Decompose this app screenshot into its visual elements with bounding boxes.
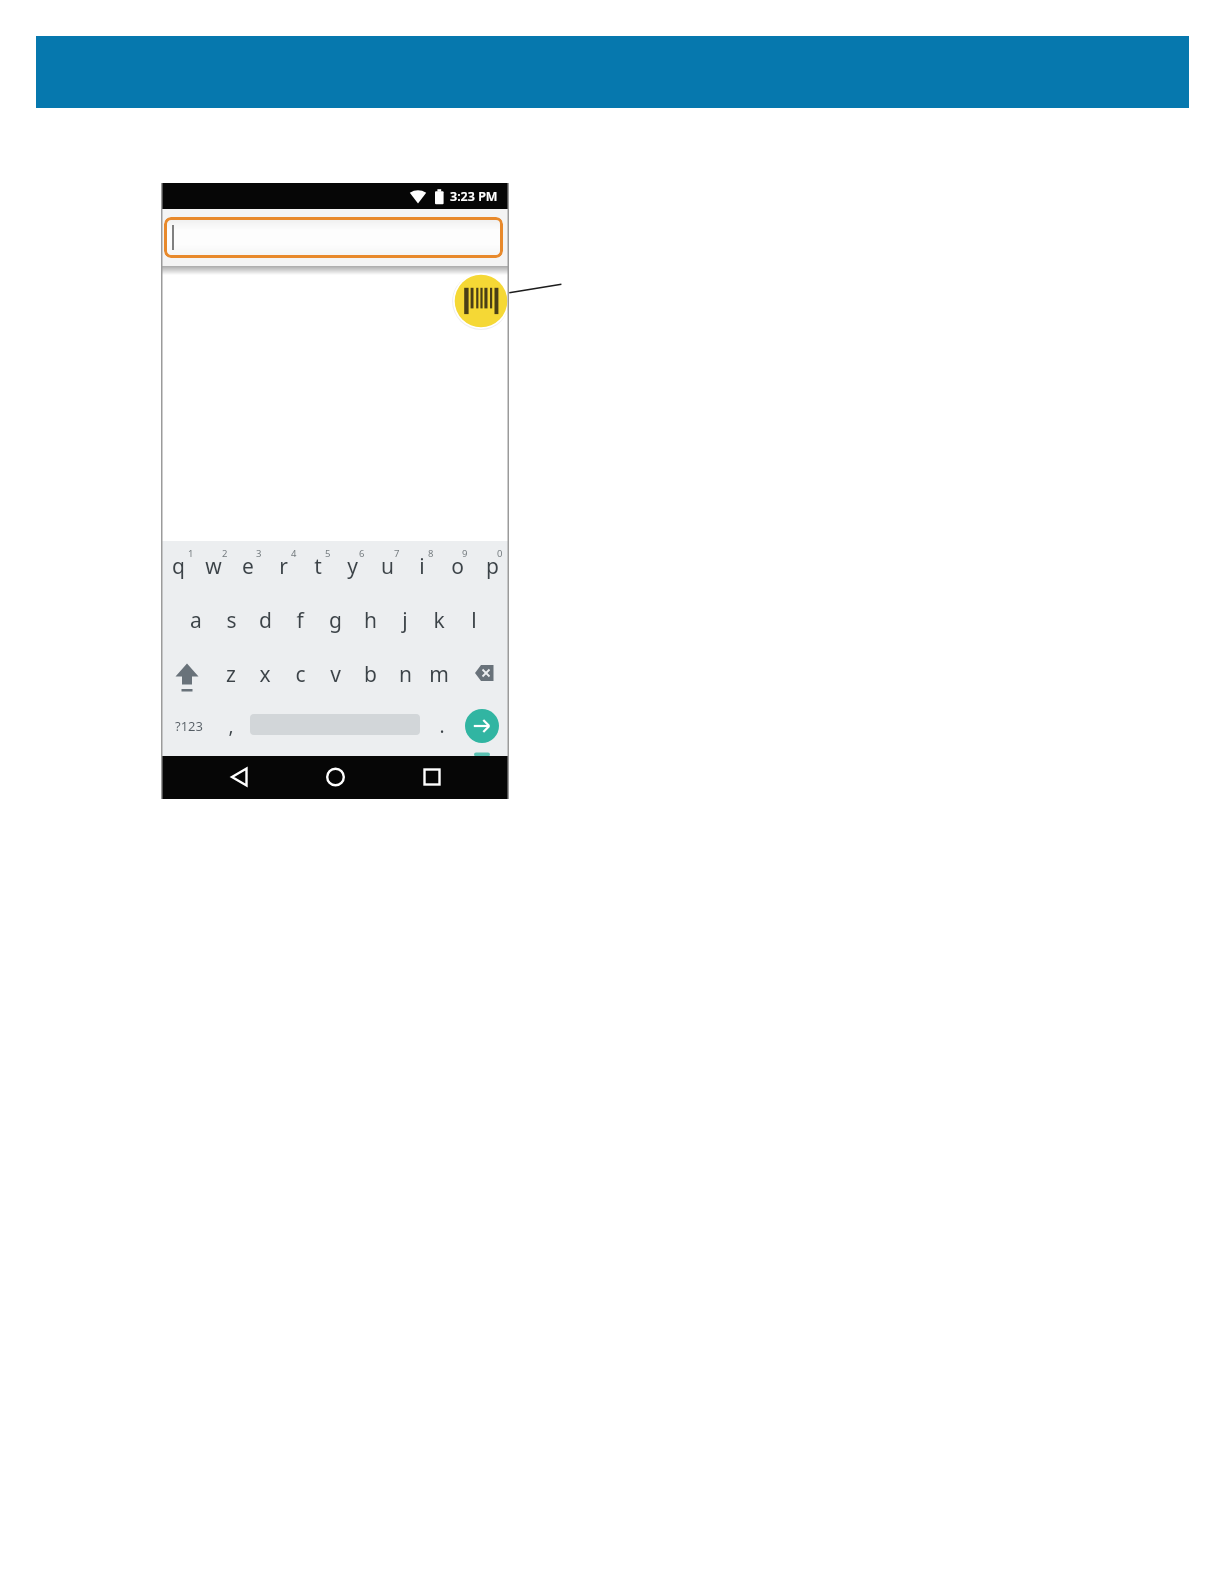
button[interactable]: c [283, 656, 317, 696]
button[interactable]: f [283, 602, 317, 642]
staticText: 0 [497, 547, 503, 560]
staticText: j [402, 606, 408, 635]
button[interactable]: y [335, 548, 369, 588]
staticText: s [226, 606, 237, 635]
button[interactable]: l [457, 602, 491, 642]
staticText: k [433, 606, 445, 635]
button[interactable]: b [353, 656, 387, 696]
staticText: 4 [291, 547, 297, 560]
staticText: 1 [188, 547, 194, 560]
staticText: 6 [359, 547, 365, 560]
staticText: e [242, 552, 254, 581]
staticText: 3 [256, 547, 262, 560]
staticText: x [259, 660, 271, 689]
staticText: 8 [428, 547, 434, 560]
button[interactable]: a [179, 602, 213, 642]
button[interactable]: o [440, 548, 474, 588]
staticText: p [486, 552, 499, 581]
staticText: ?123 [175, 717, 203, 735]
button[interactable]: d [248, 602, 282, 642]
staticText: i [419, 552, 425, 581]
button[interactable]: ?123 [169, 711, 209, 741]
staticText: f [296, 606, 304, 635]
staticText: . [439, 713, 445, 739]
button[interactable]: w [196, 548, 230, 588]
staticText: w [205, 552, 222, 581]
button[interactable]: j [388, 602, 422, 642]
staticText: r [279, 552, 288, 581]
staticText: t [314, 552, 322, 581]
button[interactable]: e [231, 548, 265, 588]
button[interactable]: p [475, 548, 509, 588]
button[interactable] [164, 217, 503, 258]
button[interactable]: k [422, 602, 456, 642]
staticText: y [347, 552, 358, 581]
staticText: 2 [222, 547, 228, 560]
staticText: u [381, 552, 394, 581]
button[interactable]: n [388, 656, 422, 696]
button[interactable]: , [214, 706, 248, 746]
staticText: l [471, 606, 477, 635]
button[interactable] [169, 658, 205, 694]
staticText: a [190, 606, 202, 635]
staticText: m [429, 660, 449, 689]
button[interactable]: r [266, 548, 300, 588]
staticText: b [364, 660, 377, 689]
button[interactable]: q [161, 548, 195, 588]
staticText: 7 [394, 547, 400, 560]
staticText: , [228, 713, 234, 739]
button[interactable]: t [301, 548, 335, 588]
staticText: n [399, 660, 412, 689]
button[interactable]: u [370, 548, 404, 588]
button[interactable]: z [214, 656, 248, 696]
button[interactable]: g [318, 602, 352, 642]
staticText: q [172, 552, 185, 581]
button[interactable]: s [214, 602, 248, 642]
button[interactable]: i [405, 548, 439, 588]
button[interactable]: x [248, 656, 282, 696]
staticText: v [330, 660, 341, 689]
staticText: h [364, 606, 377, 635]
button[interactable]: . [425, 706, 459, 746]
staticText: d [259, 606, 272, 635]
staticText: c [295, 660, 306, 689]
staticText: 5 [325, 547, 331, 560]
button[interactable] [465, 709, 499, 743]
button[interactable]: h [353, 602, 387, 642]
staticText: o [451, 552, 464, 581]
staticText: 3:23 PM [450, 188, 498, 205]
staticText: g [329, 606, 342, 635]
button[interactable]: m [422, 656, 456, 696]
button[interactable]: v [318, 656, 352, 696]
staticText: 9 [462, 547, 468, 560]
staticText: z [226, 660, 236, 689]
button[interactable] [452, 272, 510, 330]
